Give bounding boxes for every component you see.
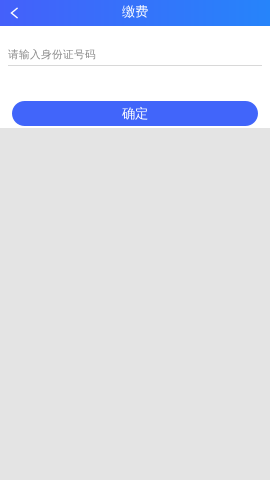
button[interactable]: 确定	[12, 101, 258, 126]
staticText: 缴费	[122, 3, 148, 20]
staticText: 请输入身份证号码	[8, 48, 96, 61]
textField[interactable]: 请输入身份证号码	[8, 48, 262, 61]
staticText: 确定	[122, 105, 148, 122]
button[interactable]: Back	[0, 0, 27, 26]
